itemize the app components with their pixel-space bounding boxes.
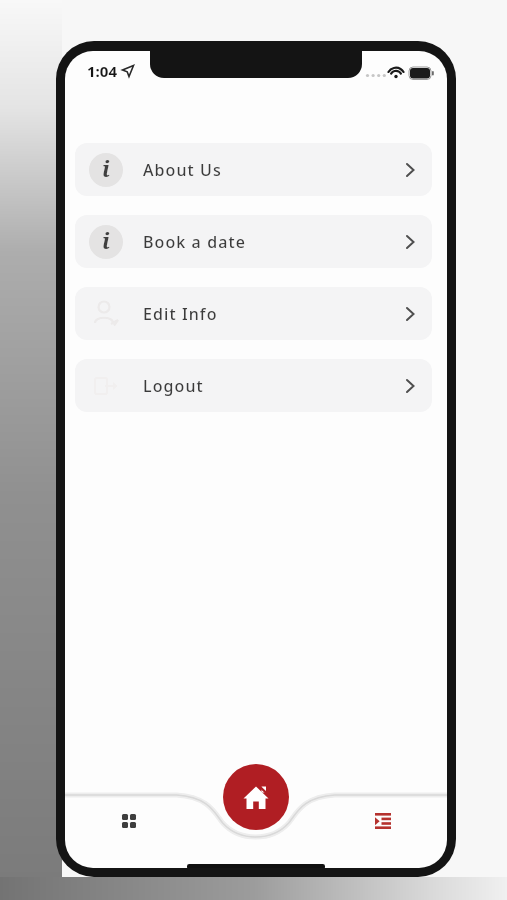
staticText: Logout — [143, 375, 204, 397]
staticText: Book a date — [143, 231, 246, 253]
button[interactable]: i — [75, 215, 432, 268]
staticText: Edit Info — [143, 303, 218, 325]
staticText: i — [102, 153, 110, 183]
button[interactable]: i — [75, 143, 432, 196]
staticText: About Us — [143, 159, 222, 181]
button[interactable] — [359, 797, 407, 845]
button[interactable]: Logout — [75, 359, 432, 412]
staticText: i — [102, 225, 110, 255]
button[interactable]: Edit Info — [75, 287, 432, 340]
staticText: 1:04 — [87, 61, 117, 81]
button[interactable] — [223, 764, 289, 830]
button[interactable] — [105, 797, 153, 845]
